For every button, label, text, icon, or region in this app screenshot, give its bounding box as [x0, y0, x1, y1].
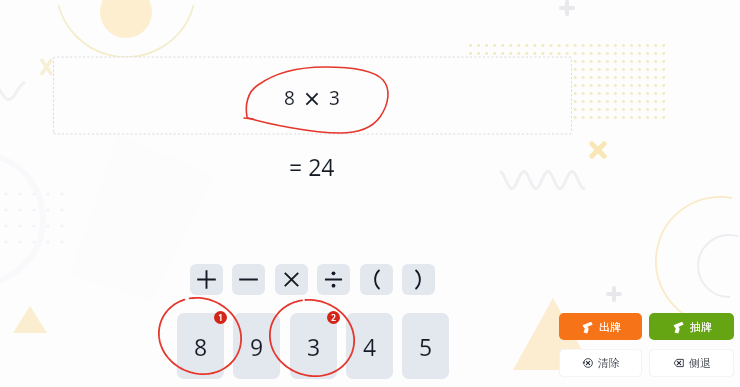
- button[interactable]: 4: [346, 313, 393, 379]
- staticText: 8: [194, 331, 208, 362]
- button[interactable]: 5: [402, 313, 449, 379]
- button[interactable]: Open parenthesis: [360, 264, 393, 295]
- staticText: 抽牌: [690, 320, 712, 334]
- button[interactable]: Close parenthesis: [402, 264, 435, 295]
- button[interactable]: 出牌: [559, 313, 642, 340]
- staticText: 2: [331, 312, 336, 323]
- staticText: 3: [329, 85, 340, 111]
- button[interactable]: 9: [233, 313, 280, 379]
- staticText: = 24: [289, 151, 335, 182]
- button[interactable]: Minus: [232, 264, 265, 295]
- button[interactable]: Plus: [190, 264, 223, 295]
- button[interactable]: Multiply: [275, 264, 308, 295]
- staticText: 9: [250, 331, 264, 362]
- staticText: 出牌: [599, 320, 621, 334]
- button[interactable]: Divide: [317, 264, 350, 295]
- staticText: 1: [218, 312, 223, 323]
- button[interactable]: 抽牌: [649, 313, 734, 340]
- staticText: 侧退: [689, 356, 711, 370]
- button[interactable]: 侧退: [649, 349, 734, 377]
- button[interactable]: 8: [177, 313, 224, 379]
- staticText: 4: [363, 331, 377, 362]
- button[interactable]: 清除: [559, 349, 642, 377]
- staticText: 清除: [598, 356, 620, 370]
- staticText: 5: [419, 331, 433, 362]
- staticText: 3: [307, 331, 321, 362]
- button[interactable]: 3: [290, 313, 337, 379]
- staticText: 8: [284, 85, 295, 111]
